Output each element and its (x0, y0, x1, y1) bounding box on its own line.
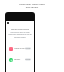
staticText: Connect (25, 58, 31, 61)
button[interactable]: Close (6, 21, 10, 25)
button[interactable]: Connect (25, 58, 31, 61)
staticText: Spotify (14, 58, 21, 61)
staticText: Connect Music Service (6, 28, 34, 30)
button[interactable]: Spotify (9, 57, 31, 62)
staticText: Apple Music (14, 47, 25, 50)
button[interactable]: Connect (25, 47, 31, 50)
staticText: Lorem ipsum dolor sit amet consectetur a… (8, 31, 32, 38)
button[interactable]: Apple Music (9, 46, 31, 51)
staticText: Connect (25, 47, 31, 50)
staticText: Listen with Apple Music and Spotify (0, 3, 64, 8)
